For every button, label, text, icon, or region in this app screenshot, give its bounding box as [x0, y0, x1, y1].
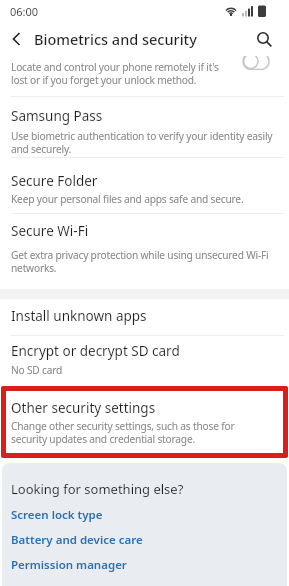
- button[interactable]: Locate and control your phone remotely i…: [0, 56, 289, 96]
- staticText: Looking for something else?: [11, 480, 184, 498]
- button[interactable]: Secure Folder: [0, 158, 289, 213]
- staticText: Screen lock type: [11, 507, 103, 523]
- staticText: Use biometric authentication to verify y…: [11, 129, 273, 156]
- button[interactable]: Install unknown apps: [0, 299, 289, 335]
- staticText: Other security settings: [11, 399, 156, 417]
- staticText: Keep your personal files and apps safe a…: [11, 192, 244, 206]
- staticText: No SD card: [11, 363, 63, 377]
- staticText: Secure Folder: [11, 172, 98, 190]
- button[interactable]: [250, 25, 278, 53]
- button[interactable]: Screen lock type: [11, 502, 287, 527]
- staticText: Change other security settings, such as …: [11, 419, 235, 446]
- staticText: Battery and device care: [11, 532, 143, 548]
- staticText: Install unknown apps: [11, 307, 147, 325]
- button[interactable]: Encrypt or decrypt SD card: [0, 336, 289, 386]
- staticText: Get extra privacy protection while using…: [11, 248, 269, 275]
- button[interactable]: Other security settings: [0, 387, 289, 463]
- button[interactable]: Secure Wi-Fi: [0, 214, 289, 289]
- button[interactable]: Battery and device care: [11, 527, 287, 552]
- button[interactable]: Samsung Pass: [0, 97, 289, 157]
- staticText: Secure Wi-Fi: [11, 222, 89, 240]
- staticText: Permission manager: [11, 557, 127, 573]
- button[interactable]: Permission manager: [11, 552, 287, 577]
- staticText: Locate and control your phone remotely i…: [11, 60, 219, 87]
- staticText: Encrypt or decrypt SD card: [11, 342, 180, 360]
- staticText: Samsung Pass: [11, 107, 103, 125]
- button[interactable]: [4, 26, 30, 52]
- staticText: 06:00: [10, 4, 39, 19]
- staticText: Biometrics and security: [34, 29, 197, 49]
